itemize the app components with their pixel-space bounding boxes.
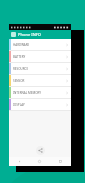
staticText: DISPLAY [13,103,65,107]
button[interactable]: Recents [50,157,71,166]
button[interactable]: BATTERY [9,51,71,62]
staticText: Phone INFO [18,32,42,37]
staticText: HARDWARE [13,43,65,47]
button[interactable]: RESOURCE [9,63,71,74]
staticText: INTERNAL MEMORY [13,91,65,95]
button[interactable]: Share [36,146,45,155]
staticText: BATTERY [13,55,65,59]
button[interactable]: DISPLAY [9,99,71,110]
button[interactable]: App icon [11,32,16,37]
staticText: RESOURCE [13,67,65,71]
button[interactable]: SENSOR [9,75,71,86]
button[interactable]: Home [29,157,50,166]
button[interactable]: HARDWARE [9,39,71,50]
staticText: SENSOR [13,79,65,83]
button[interactable]: Back [9,157,29,166]
button[interactable]: INTERNAL MEMORY [9,87,71,98]
